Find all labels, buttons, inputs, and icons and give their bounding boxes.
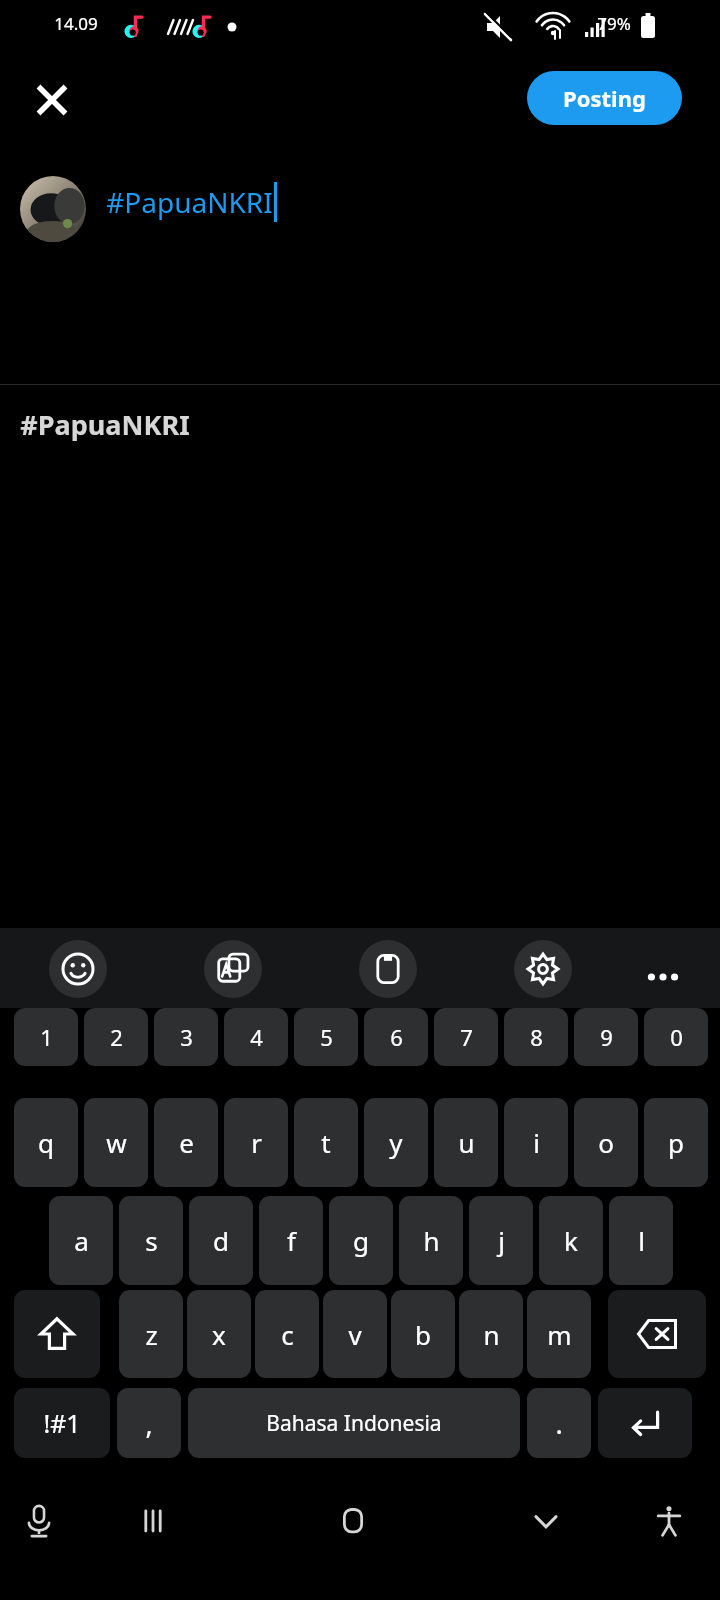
staticText: h bbox=[423, 1223, 440, 1258]
staticText: s bbox=[145, 1223, 158, 1258]
button[interactable]: i bbox=[504, 1098, 568, 1187]
staticText: Posting bbox=[563, 83, 646, 113]
staticText: 3 bbox=[180, 1022, 193, 1052]
staticText: , bbox=[145, 1405, 153, 1442]
button[interactable]: 0 bbox=[644, 1008, 708, 1066]
button[interactable]: Backspace bbox=[608, 1290, 706, 1378]
button[interactable]: j bbox=[469, 1196, 533, 1285]
staticText: 14.09 bbox=[54, 12, 98, 35]
button[interactable]: u bbox=[434, 1098, 498, 1187]
button[interactable]: Voice input bbox=[10, 1492, 68, 1550]
staticText: n bbox=[483, 1317, 500, 1352]
button[interactable]: !#1 bbox=[14, 1388, 110, 1458]
button[interactable]: q bbox=[14, 1098, 78, 1187]
button[interactable]: f bbox=[259, 1196, 323, 1285]
button[interactable]: Keyboard settings bbox=[514, 940, 572, 998]
button[interactable]: Bahasa Indonesia bbox=[188, 1388, 520, 1458]
staticText: y bbox=[389, 1125, 403, 1160]
staticText: o bbox=[598, 1125, 614, 1160]
staticText: p bbox=[668, 1125, 684, 1160]
button[interactable]: a bbox=[49, 1196, 113, 1285]
button[interactable]: v bbox=[323, 1290, 387, 1378]
button[interactable]: Shift bbox=[14, 1290, 100, 1378]
button[interactable]: y bbox=[364, 1098, 428, 1187]
button[interactable]: t bbox=[294, 1098, 358, 1187]
staticText: 7 bbox=[460, 1022, 473, 1052]
button[interactable]: Translate bbox=[204, 940, 262, 998]
button[interactable]: 5 bbox=[294, 1008, 358, 1066]
button[interactable]: 2 bbox=[84, 1008, 148, 1066]
button[interactable]: Home bbox=[324, 1492, 382, 1550]
button[interactable]: 1 bbox=[14, 1008, 78, 1066]
button[interactable]: Emoji bbox=[49, 940, 107, 998]
button[interactable]: 8 bbox=[504, 1008, 568, 1066]
button[interactable]: Hide keyboard bbox=[517, 1492, 575, 1550]
button[interactable]: #PapuaNKRI bbox=[0, 385, 720, 463]
button[interactable]: l bbox=[609, 1196, 673, 1285]
staticText: b bbox=[415, 1317, 431, 1352]
staticText: r bbox=[251, 1125, 262, 1160]
staticText: x bbox=[212, 1317, 226, 1352]
staticText: e bbox=[179, 1125, 194, 1160]
button[interactable]: x bbox=[187, 1290, 251, 1378]
staticText: 6 bbox=[390, 1022, 403, 1052]
button[interactable]: 4 bbox=[224, 1008, 288, 1066]
staticText: z bbox=[145, 1317, 158, 1352]
button[interactable]: . bbox=[527, 1388, 591, 1458]
staticText: 2 bbox=[110, 1022, 123, 1052]
button[interactable]: z bbox=[119, 1290, 183, 1378]
staticText: d bbox=[213, 1223, 229, 1258]
button[interactable]: 7 bbox=[434, 1008, 498, 1066]
button[interactable]: Close bbox=[22, 70, 82, 130]
button[interactable]: s bbox=[119, 1196, 183, 1285]
button[interactable]: c bbox=[255, 1290, 319, 1378]
button[interactable]: 9 bbox=[574, 1008, 638, 1066]
button[interactable]: r bbox=[224, 1098, 288, 1187]
staticText: 9 bbox=[600, 1022, 613, 1052]
button[interactable]: d bbox=[189, 1196, 253, 1285]
staticText: w bbox=[106, 1125, 127, 1160]
staticText: Bahasa Indonesia bbox=[266, 1409, 442, 1438]
staticText: !#1 bbox=[43, 1406, 81, 1440]
staticText: 5 bbox=[320, 1022, 333, 1052]
staticText: f bbox=[287, 1223, 296, 1258]
button[interactable]: h bbox=[399, 1196, 463, 1285]
button[interactable]: k bbox=[539, 1196, 603, 1285]
staticText: a bbox=[74, 1223, 89, 1258]
button[interactable]: Recent apps bbox=[124, 1492, 182, 1550]
button[interactable]: More options bbox=[634, 948, 692, 1006]
button[interactable]: g bbox=[329, 1196, 393, 1285]
staticText: q bbox=[38, 1125, 54, 1160]
staticText: 79% bbox=[597, 12, 631, 35]
staticText: c bbox=[281, 1317, 294, 1352]
button[interactable]: Clipboard bbox=[359, 940, 417, 998]
staticText: t bbox=[321, 1125, 331, 1160]
staticText: i bbox=[533, 1125, 540, 1160]
staticText: 4 bbox=[250, 1022, 263, 1052]
button[interactable]: Posting bbox=[527, 71, 682, 125]
staticText: . bbox=[555, 1405, 563, 1442]
staticText: k bbox=[564, 1223, 578, 1258]
button[interactable]: b bbox=[391, 1290, 455, 1378]
staticText: m bbox=[547, 1317, 572, 1352]
staticText: #PapuaNKRI bbox=[20, 406, 190, 443]
staticText: 8 bbox=[530, 1022, 543, 1052]
staticText: l bbox=[638, 1223, 645, 1258]
button[interactable]: n bbox=[459, 1290, 523, 1378]
staticText: v bbox=[348, 1317, 362, 1352]
button[interactable]: Profile picture bbox=[20, 176, 86, 242]
button[interactable]: p bbox=[644, 1098, 708, 1187]
staticText: j bbox=[498, 1223, 505, 1258]
staticText: 0 bbox=[670, 1022, 683, 1052]
button[interactable]: Enter bbox=[598, 1388, 692, 1458]
button[interactable]: Accessibility bbox=[640, 1492, 698, 1550]
button[interactable]: 3 bbox=[154, 1008, 218, 1066]
staticText: g bbox=[353, 1223, 369, 1258]
button[interactable]: m bbox=[527, 1290, 591, 1378]
staticText: u bbox=[458, 1125, 475, 1160]
button[interactable]: w bbox=[84, 1098, 148, 1187]
button[interactable]: e bbox=[154, 1098, 218, 1187]
button[interactable]: o bbox=[574, 1098, 638, 1187]
button[interactable]: 6 bbox=[364, 1008, 428, 1066]
button[interactable]: , bbox=[117, 1388, 181, 1458]
